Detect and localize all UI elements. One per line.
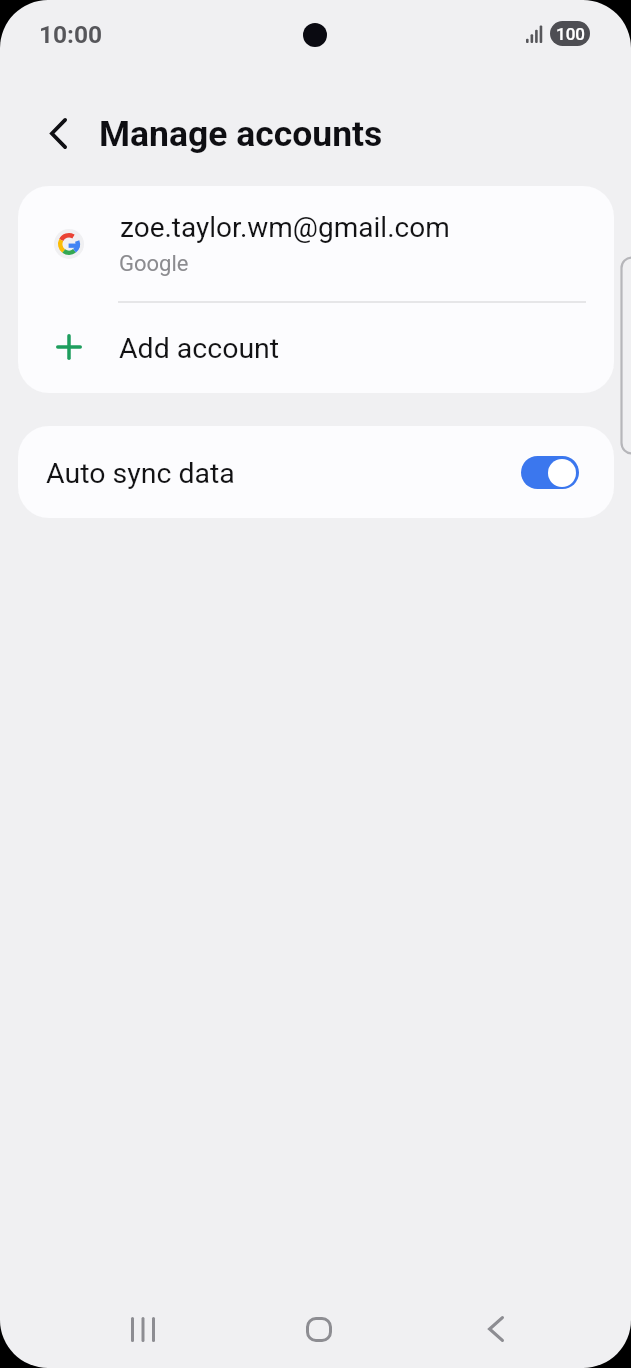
staticText: Add account [119,332,280,365]
button[interactable]: Auto sync data [18,426,614,518]
staticText: Manage accounts [99,113,383,155]
button[interactable]: Recent apps [72,1290,212,1368]
button[interactable]: Home [246,1290,386,1368]
staticText: Auto sync data [46,457,235,490]
staticText: Google [119,251,189,277]
button[interactable]: Back [419,1290,559,1368]
staticText: 10:00 [39,20,103,49]
button[interactable]: zoe.taylor.wm@gmail.com [18,186,614,302]
button[interactable]: Back [25,100,91,166]
staticText: zoe.taylor.wm@gmail.com [120,211,450,244]
staticText: 100 [556,24,585,44]
button[interactable]: Add account [18,303,614,393]
